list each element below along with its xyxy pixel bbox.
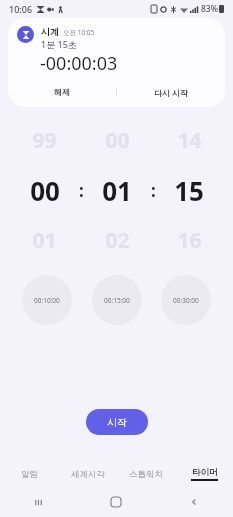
button[interactable]: 타이머	[175, 461, 233, 487]
staticText: 오전 10:05	[63, 28, 95, 37]
staticText: 10:06	[9, 3, 33, 15]
staticText: 15	[174, 173, 204, 208]
staticText: 00:15:00	[104, 296, 130, 305]
staticText: 99	[32, 126, 57, 155]
button[interactable]: 00:15:00	[92, 275, 142, 325]
button[interactable]: 해제	[8, 81, 116, 103]
staticText: :	[151, 179, 156, 202]
staticText: 00:30:00	[173, 296, 199, 305]
staticText: :	[79, 179, 84, 202]
staticText: 02	[105, 226, 130, 255]
button[interactable]: Back	[155, 487, 233, 517]
button[interactable]: 00:30:00	[161, 275, 211, 325]
button[interactable]: 01	[14, 226, 75, 255]
button[interactable]: 99	[14, 126, 75, 155]
button[interactable]: 16	[159, 226, 219, 255]
staticText: 세계시각	[71, 469, 105, 480]
staticText: 14	[177, 126, 202, 155]
other: Clock	[17, 26, 34, 43]
button[interactable]: 세계시각	[59, 461, 117, 487]
button[interactable]: Clock	[8, 18, 225, 107]
staticText: 00:10:00	[34, 296, 60, 305]
button[interactable]: 01	[87, 173, 147, 208]
button[interactable]: 15	[159, 173, 219, 208]
staticText: 알림	[21, 469, 38, 480]
button[interactable]: Recents	[0, 487, 77, 517]
button[interactable]: Home	[77, 487, 155, 517]
button[interactable]: 스톱워치	[117, 461, 175, 487]
staticText: 타이머	[192, 467, 218, 478]
button[interactable]: 다시 시작	[117, 81, 225, 103]
staticText: 01	[32, 226, 57, 255]
staticText: 16	[177, 226, 202, 255]
staticText: 83%	[201, 3, 218, 15]
staticText: 시작	[107, 416, 127, 429]
staticText: 1분 15초	[41, 38, 77, 50]
staticText: 01	[102, 173, 132, 208]
staticText: 스톱워치	[129, 469, 163, 480]
staticText: -00:00:03	[40, 51, 118, 76]
button[interactable]: 00:10:00	[22, 275, 72, 325]
button[interactable]: 00	[87, 126, 147, 155]
staticText: 다시 시작	[154, 87, 189, 98]
staticText: 시계	[41, 26, 59, 37]
button[interactable]: 00	[14, 173, 75, 208]
staticText: 해제	[54, 87, 70, 97]
button[interactable]: 시작	[86, 409, 148, 435]
button[interactable]: 알림	[0, 461, 59, 487]
button[interactable]: 02	[87, 226, 147, 255]
button[interactable]: 14	[159, 126, 219, 155]
staticText: 00	[105, 126, 130, 155]
staticText: 00	[30, 173, 60, 208]
